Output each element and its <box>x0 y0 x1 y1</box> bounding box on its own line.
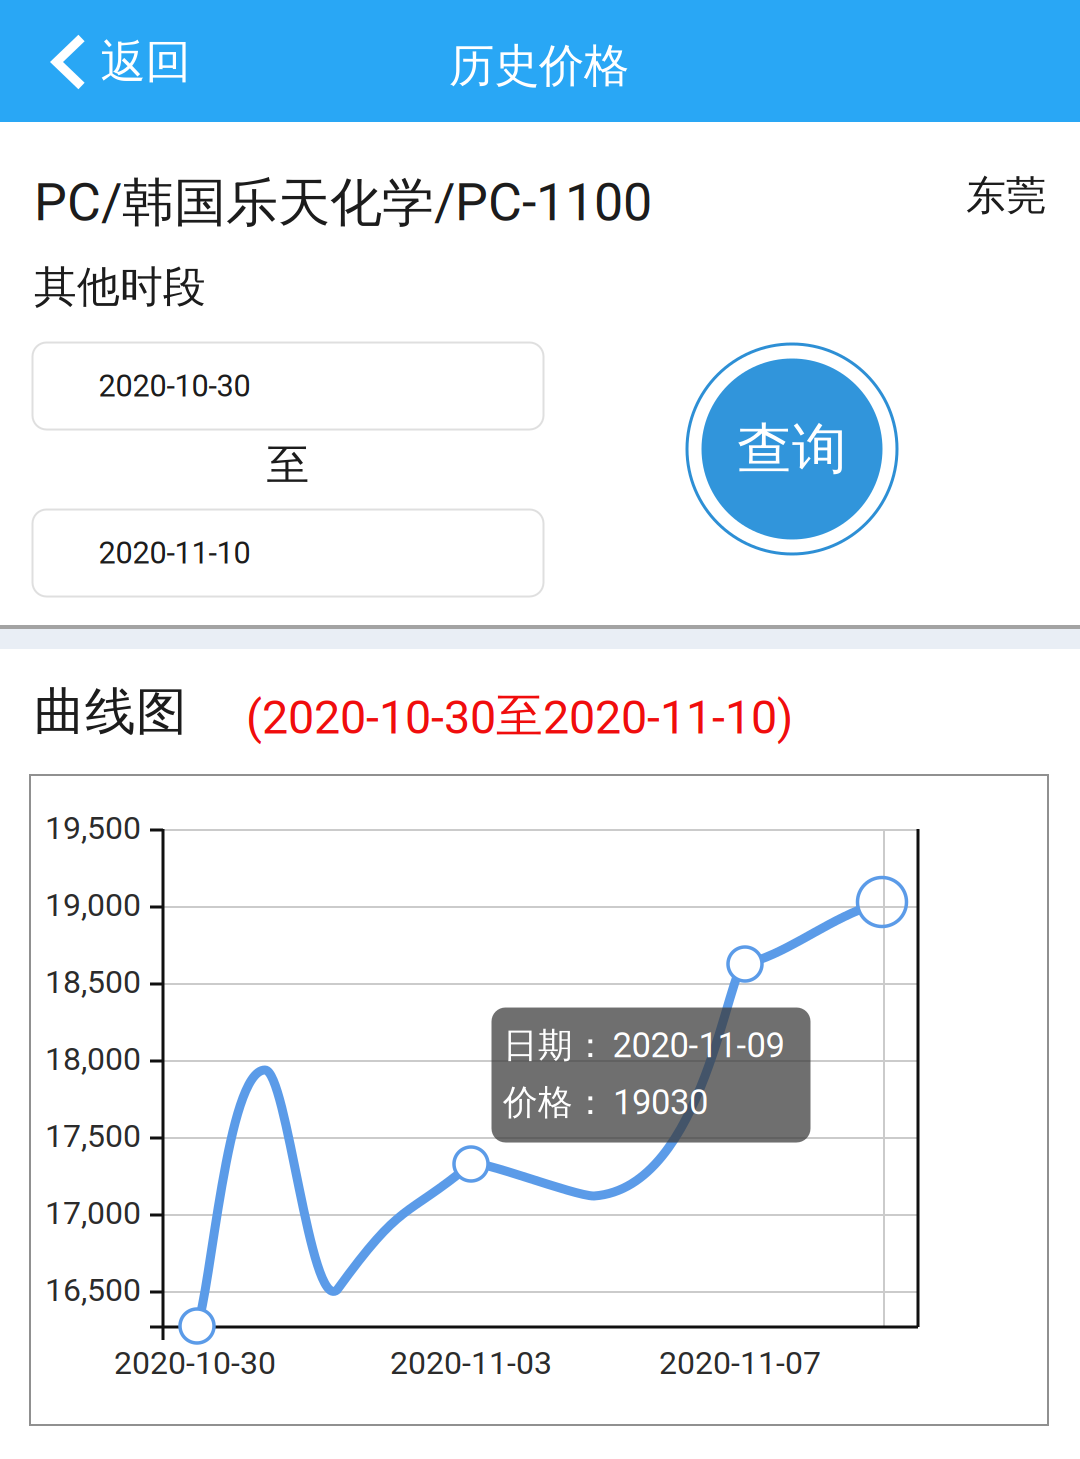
staticText: 19030 <box>613 1082 708 1123</box>
staticText: 18,500 <box>45 963 141 1001</box>
staticText: (2020-10-30至2020-11-10) <box>246 687 793 745</box>
staticText: 19,000 <box>45 886 141 924</box>
staticText: 价格： <box>503 1081 608 1124</box>
button[interactable]: 2020-10-30 <box>32 342 543 429</box>
staticText: 17,500 <box>45 1117 141 1155</box>
button[interactable]: 查询 <box>686 343 898 555</box>
staticText: 2020-10-30 <box>98 368 250 404</box>
staticText: 2020-11-03 <box>390 1344 552 1382</box>
staticText: 至 <box>266 438 309 492</box>
staticText: 东莞 <box>966 171 1046 221</box>
staticText: 18,000 <box>45 1040 141 1078</box>
staticText: 16,500 <box>45 1271 141 1309</box>
staticText: 2020-11-07 <box>659 1344 821 1382</box>
staticText: 返回 <box>100 33 190 90</box>
staticText: 17,000 <box>45 1194 141 1232</box>
button[interactable]: 2020-11-10 <box>32 509 543 596</box>
staticText: 19,500 <box>45 809 141 847</box>
staticText: 2020-10-30 <box>114 1344 276 1382</box>
staticText: 历史价格 <box>449 37 629 94</box>
staticText: 2020-11-09 <box>612 1025 784 1066</box>
staticText: 2020-11-10 <box>98 535 250 571</box>
staticText: 日期： <box>503 1024 608 1067</box>
staticText: 查询 <box>737 415 847 483</box>
staticText: PC/韩国乐天化学/PC-1100 <box>34 170 652 236</box>
staticText: 曲线图 <box>34 680 187 744</box>
button[interactable]: 返回 <box>1 1 220 123</box>
staticText: 其他时段 <box>34 260 206 314</box>
